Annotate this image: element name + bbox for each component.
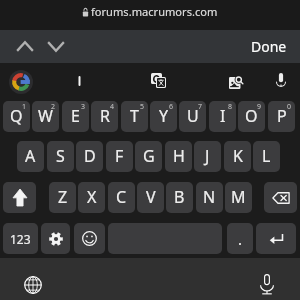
staticText: 0	[287, 102, 292, 112]
button[interactable]: T	[121, 101, 148, 132]
button[interactable]: Done	[237, 30, 300, 63]
staticText: 2	[51, 102, 56, 112]
staticText: P	[277, 105, 287, 127]
button[interactable]: W	[32, 101, 59, 132]
button[interactable]: Shift	[3, 182, 36, 213]
staticText: N	[203, 186, 216, 208]
button[interactable]: Google Lens	[221, 67, 251, 97]
button[interactable]: Google search	[6, 67, 36, 97]
button[interactable]: N	[196, 182, 223, 213]
button[interactable]: P	[268, 101, 295, 132]
staticText: X	[87, 186, 97, 208]
button[interactable]: S	[47, 141, 74, 172]
staticText: 6	[169, 102, 174, 112]
staticText: R	[100, 105, 110, 127]
button[interactable]: J	[194, 141, 221, 172]
button[interactable]: Change keyboard language	[18, 270, 48, 300]
button[interactable]: O	[238, 101, 265, 132]
button[interactable]: Period	[227, 223, 253, 254]
button[interactable]: L	[253, 141, 280, 172]
button[interactable]: U	[179, 101, 206, 132]
button[interactable]: Numbers and symbols	[3, 223, 38, 254]
staticText: 9	[257, 102, 262, 112]
button[interactable]: M	[225, 182, 252, 213]
staticText: 3	[81, 102, 86, 112]
staticText: 5	[140, 102, 145, 112]
button[interactable]: Next field	[42, 33, 69, 59]
staticText: .	[238, 229, 243, 249]
button[interactable]: Z	[49, 182, 76, 213]
staticText: O	[245, 105, 258, 127]
button[interactable]: V	[137, 182, 164, 213]
button[interactable]: C	[108, 182, 135, 213]
button[interactable]: Previous field	[11, 33, 38, 59]
staticText: D	[84, 145, 96, 167]
staticText: K	[233, 145, 243, 167]
staticText: U	[187, 105, 199, 127]
button[interactable]: Translate	[143, 66, 173, 96]
button[interactable]: A	[17, 141, 44, 172]
staticText: I	[220, 105, 226, 127]
button[interactable]: Text cursor	[64, 66, 94, 96]
staticText: 123	[10, 231, 31, 247]
staticText: 4	[110, 102, 115, 112]
button[interactable]: I	[209, 101, 236, 132]
button[interactable]: Enter	[256, 223, 296, 254]
staticText: T	[130, 105, 139, 127]
button[interactable]: B	[166, 182, 193, 213]
button[interactable]: R	[91, 101, 118, 132]
button[interactable]: F	[106, 141, 133, 172]
staticText: Q	[10, 105, 23, 127]
staticText: V	[146, 186, 156, 208]
staticText: C	[116, 186, 127, 208]
button[interactable]: G	[135, 141, 162, 172]
staticText: W	[38, 105, 53, 127]
staticText: H	[173, 145, 185, 167]
button[interactable]: Keyboard settings	[41, 223, 70, 254]
button[interactable]: Voice input	[266, 65, 296, 95]
staticText: J	[205, 145, 210, 167]
staticText: M	[231, 186, 246, 208]
staticText: B	[174, 186, 185, 208]
staticText: E	[71, 105, 80, 127]
staticText: Done	[251, 37, 287, 56]
staticText: S	[56, 145, 65, 167]
staticText: forums.macrumors.com	[91, 4, 218, 19]
staticText: 7	[198, 102, 203, 112]
staticText: G	[143, 145, 155, 167]
button[interactable]: D	[76, 141, 103, 172]
staticText: A	[25, 145, 36, 167]
button[interactable]: X	[78, 182, 105, 213]
button[interactable]: Q	[3, 101, 30, 132]
button[interactable]: E	[62, 101, 89, 132]
staticText: Z	[58, 186, 68, 208]
button[interactable]: Voice input	[252, 269, 282, 299]
button[interactable]: Y	[150, 101, 177, 132]
staticText: L	[262, 145, 271, 167]
staticText: 8	[228, 102, 233, 112]
button[interactable]: Backspace	[264, 182, 297, 213]
button[interactable]: H	[165, 141, 192, 172]
staticText: F	[115, 145, 124, 167]
button[interactable]: Emoji	[74, 223, 105, 254]
staticText: Y	[159, 105, 169, 127]
staticText: 1	[22, 102, 27, 112]
button[interactable]: K	[224, 141, 251, 172]
